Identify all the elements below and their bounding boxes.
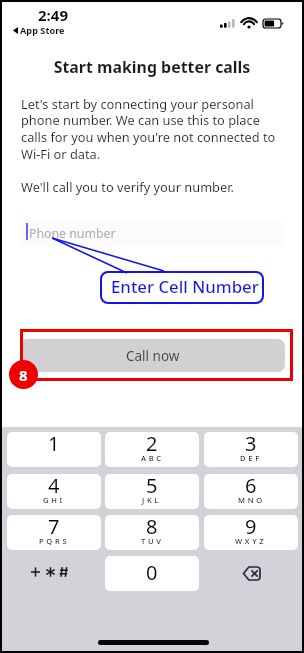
button[interactable]: 8 [105, 515, 199, 550]
staticText: Let's start by connecting your personal … [21, 95, 279, 163]
staticText: 5 [146, 474, 158, 499]
staticText: Phone number [29, 225, 116, 242]
button[interactable]: 0 [105, 556, 199, 591]
staticText: Call now [126, 347, 180, 365]
button[interactable]: 1 [7, 432, 101, 467]
button[interactable]: Back to App Store [13, 24, 65, 37]
button[interactable]: 9 [204, 515, 298, 550]
staticText: 2:49 [38, 5, 68, 25]
button[interactable]: 7 [7, 515, 101, 550]
button[interactable]: 6 [204, 474, 298, 509]
staticText: GHI [43, 495, 65, 505]
staticText: PQRS [39, 536, 70, 546]
staticText: 1 [48, 432, 60, 457]
staticText: DEF [240, 453, 262, 463]
staticText: 4 [48, 474, 60, 499]
staticText: 3 [245, 432, 257, 457]
staticText: 6 [245, 474, 257, 499]
staticText: ABC [141, 453, 164, 463]
staticText: TUV [141, 536, 164, 546]
staticText: MNO [238, 495, 265, 505]
staticText: Enter Cell Number [111, 275, 259, 298]
staticText: 8 [146, 515, 158, 540]
button[interactable]: 4 [7, 474, 101, 509]
staticText: 0 [146, 559, 158, 586]
button[interactable]: Backspace [204, 556, 298, 591]
staticText: WXYZ [235, 536, 267, 546]
staticText: JKL [142, 495, 162, 505]
staticText: 8 [19, 365, 28, 385]
button[interactable]: 3 [204, 432, 298, 467]
button[interactable]: Phone number [20, 220, 284, 246]
button[interactable]: 2 [105, 432, 199, 467]
staticText: We'll call you to verify your number. [21, 178, 234, 195]
button[interactable]: Call now [20, 339, 285, 372]
staticText: 2 [146, 432, 158, 457]
staticText: Start making better calls [2, 56, 302, 78]
staticText: App Store [20, 24, 65, 37]
button[interactable]: Symbols [7, 556, 101, 591]
button[interactable]: 5 [105, 474, 199, 509]
staticText: 7 [48, 515, 60, 540]
staticText: 9 [245, 515, 257, 540]
button[interactable]: Enter Cell Number [100, 271, 264, 304]
